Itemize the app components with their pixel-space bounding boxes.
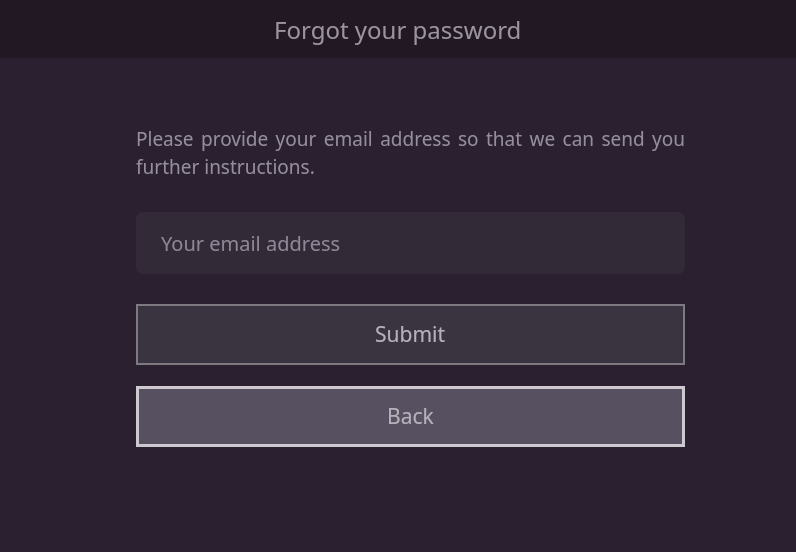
staticText: Please provide your email address so tha…	[136, 126, 685, 180]
button[interactable]: Back	[136, 386, 685, 447]
staticText: Forgot your password	[274, 13, 522, 46]
staticText: Submit	[375, 320, 446, 349]
button[interactable]: Submit	[136, 304, 685, 365]
staticText: Your email address	[161, 230, 341, 257]
button[interactable]: Your email address	[136, 212, 685, 274]
staticText: Back	[387, 402, 434, 431]
